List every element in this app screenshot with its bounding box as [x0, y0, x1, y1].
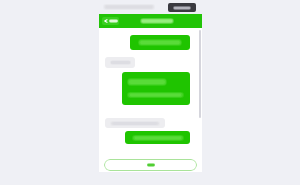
button[interactable] [105, 57, 135, 68]
button[interactable] [125, 131, 190, 144]
button[interactable]: Badge [168, 3, 196, 12]
button[interactable] [105, 118, 165, 128]
button[interactable] [122, 72, 190, 105]
button[interactable]: Back [102, 17, 119, 25]
button[interactable] [130, 35, 190, 50]
button[interactable]: Action [104, 159, 197, 171]
